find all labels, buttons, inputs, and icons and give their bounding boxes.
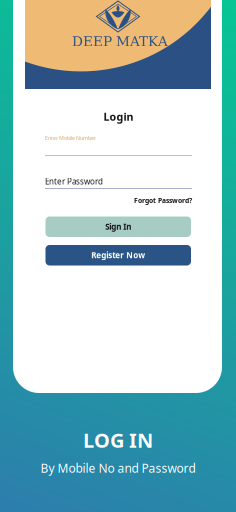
- staticText: DEEP MATKA: [72, 34, 168, 49]
- staticText: Enter Mobile Number: [45, 134, 96, 142]
- staticText: Register Now: [91, 250, 145, 260]
- staticText: Enter Password: [45, 176, 103, 187]
- button[interactable]: Register Now: [45, 245, 191, 265]
- button[interactable]: Forgot Password?: [45, 196, 192, 205]
- staticText: Sign In: [105, 221, 131, 232]
- staticText: By Mobile No and Password: [40, 460, 195, 476]
- button[interactable]: Sign In: [45, 216, 191, 237]
- staticText: Forgot Password?: [134, 196, 192, 205]
- staticText: LOG IN: [83, 427, 153, 453]
- staticText: Login: [103, 109, 133, 124]
